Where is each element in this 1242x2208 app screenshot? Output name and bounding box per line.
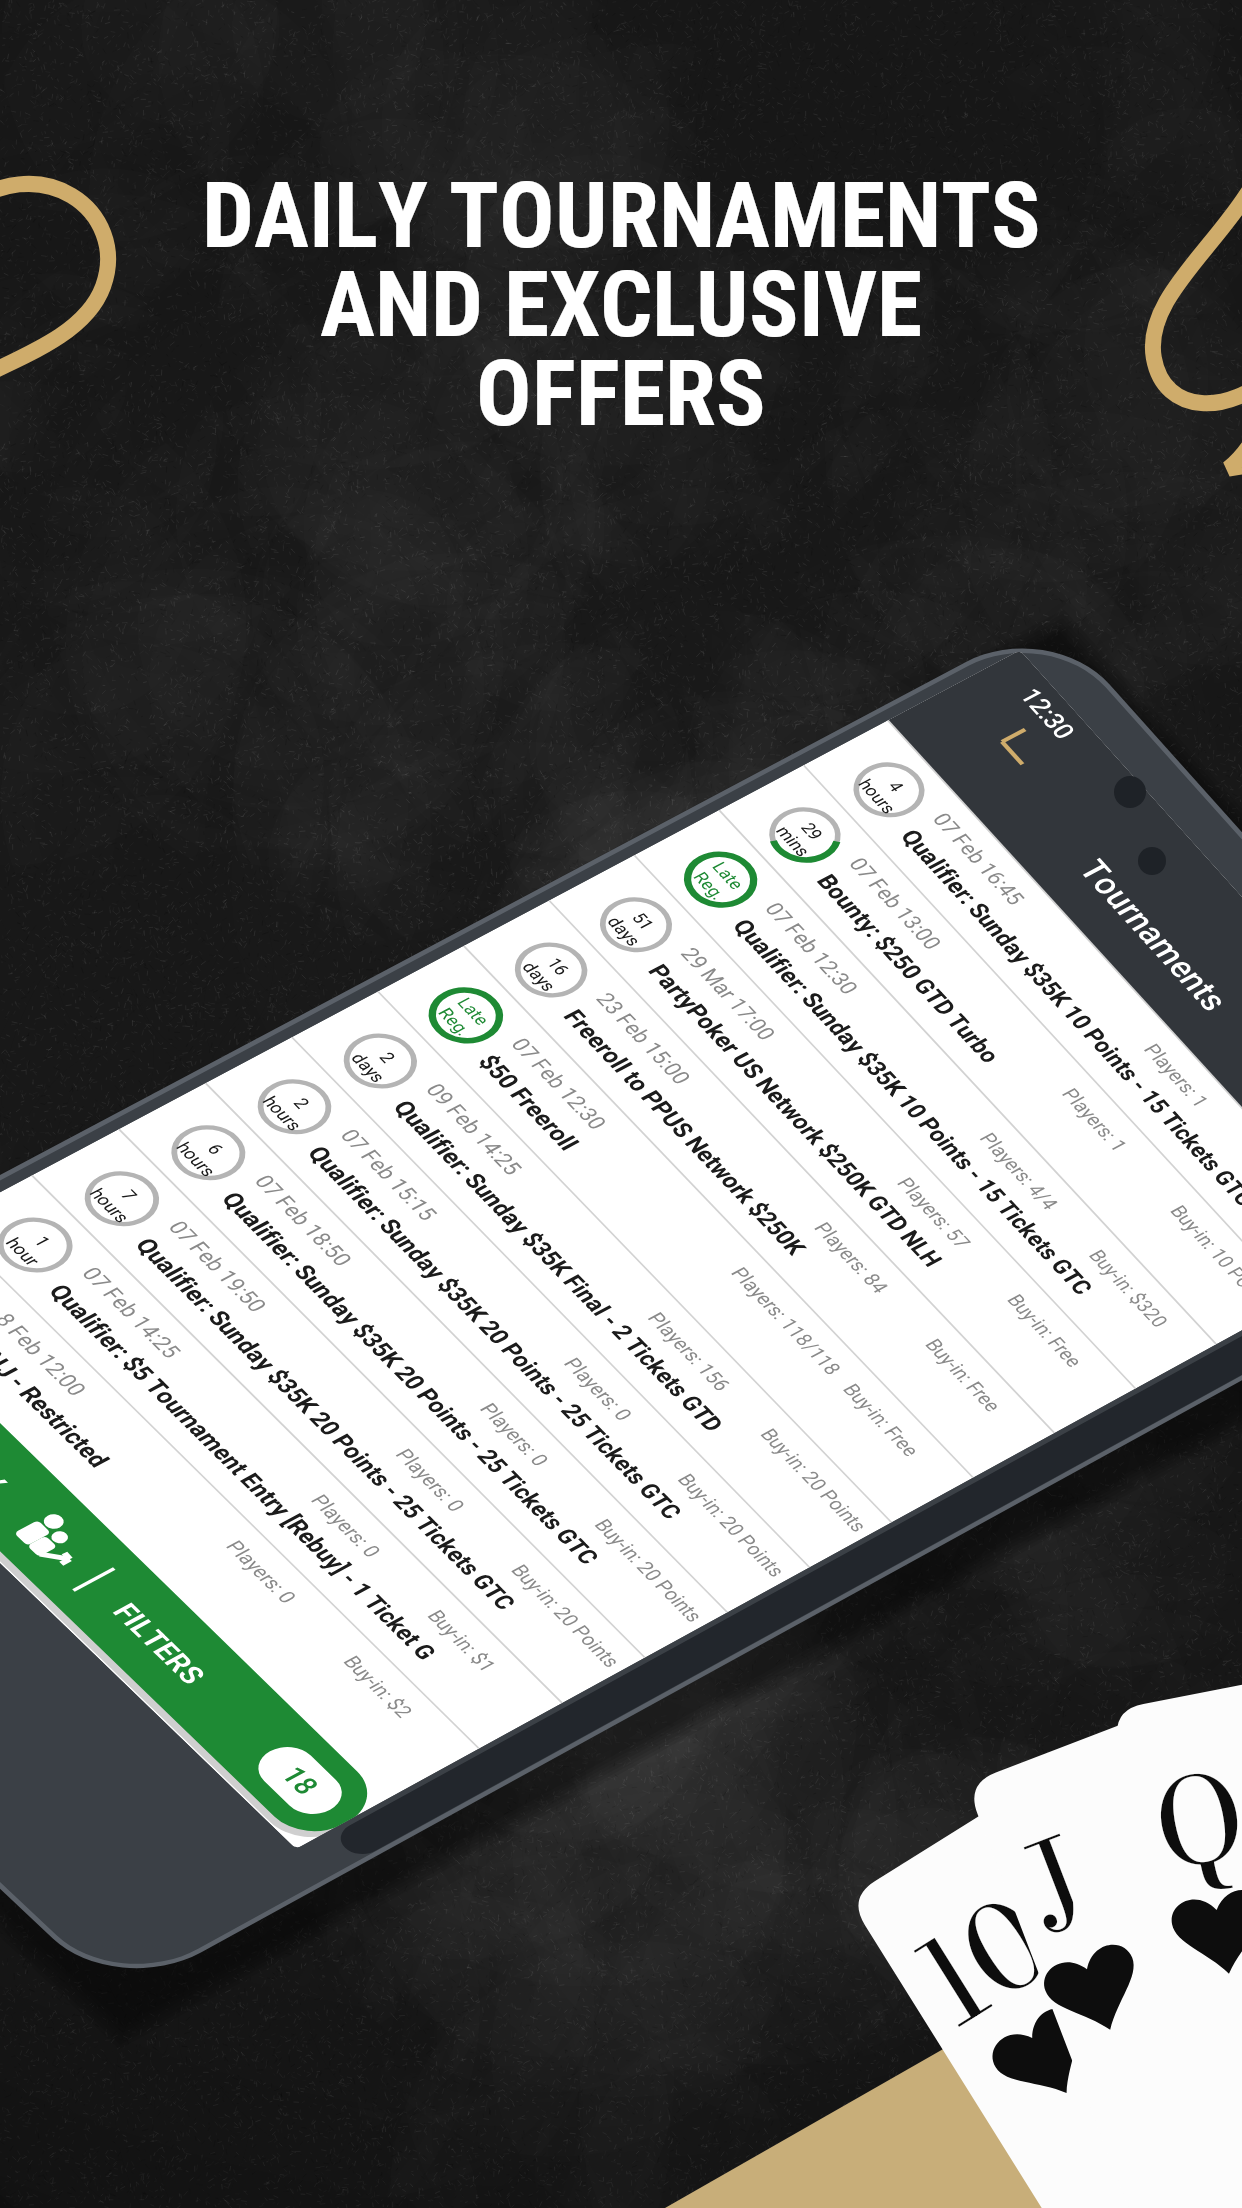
button[interactable]: Daily tournaments and exclusive offers p…: [0, 0, 1242, 2208]
